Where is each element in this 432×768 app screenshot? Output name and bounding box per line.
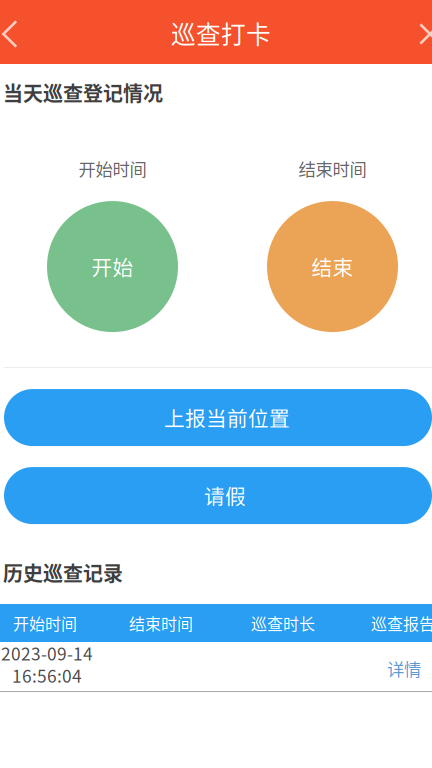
staticText: 2023-09-14 bbox=[1, 640, 93, 665]
staticText: 结束时间 bbox=[298, 156, 366, 181]
staticText: 开始时间 bbox=[13, 611, 77, 635]
button[interactable]: 返回 bbox=[0, 0, 44, 64]
staticText: 开始时间 bbox=[78, 156, 146, 181]
staticText: 巡查打卡 bbox=[171, 15, 271, 51]
staticText: 结束 bbox=[311, 252, 353, 281]
staticText: 历史巡查记录 bbox=[3, 558, 123, 587]
staticText: 开始 bbox=[91, 252, 133, 281]
button[interactable]: 开始 bbox=[47, 201, 178, 332]
button[interactable]: 结束 bbox=[267, 201, 398, 332]
staticText: 16:56:04 bbox=[12, 662, 82, 688]
button[interactable]: 上报当前位置 bbox=[4, 389, 432, 446]
staticText: 详情 bbox=[387, 656, 421, 681]
staticText: 巡查报告 bbox=[371, 611, 432, 635]
staticText: 巡查时长 bbox=[251, 611, 315, 635]
staticText: 上报当前位置 bbox=[164, 403, 290, 432]
staticText: 结束时间 bbox=[129, 611, 193, 635]
staticText: 请假 bbox=[204, 481, 246, 510]
button[interactable]: 详情 bbox=[0, 642, 432, 691]
button[interactable]: 请假 bbox=[4, 467, 432, 524]
staticText: 当天巡查登记情况 bbox=[3, 78, 163, 107]
button[interactable]: 关闭 bbox=[388, 0, 432, 64]
